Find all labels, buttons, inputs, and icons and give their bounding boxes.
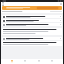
- button[interactable]: [2, 23, 62, 26]
- button[interactable]: [2, 19, 62, 22]
- button[interactable]: [2, 41, 62, 46]
- button[interactable]: [2, 37, 62, 40]
- button[interactable]: Search: [23, 59, 27, 63]
- button[interactable]: Alerts: [37, 59, 41, 63]
- button[interactable]: [2, 28, 62, 35]
- button[interactable]: [2, 6, 62, 10]
- button[interactable]: [2, 15, 62, 18]
- button[interactable]: Home: [10, 59, 14, 63]
- button[interactable]: Account: [50, 59, 54, 63]
